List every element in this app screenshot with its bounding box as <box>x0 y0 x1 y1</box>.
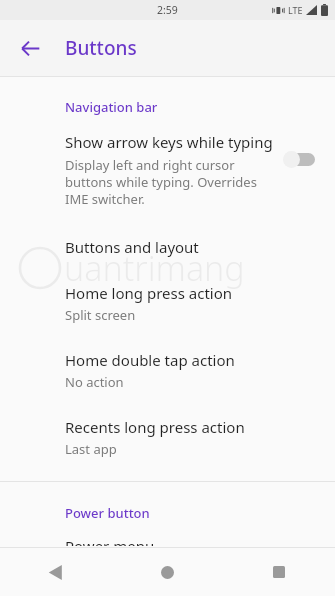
staticText: Show arrow keys while typing <box>65 132 273 152</box>
staticText: Split screen <box>65 306 136 324</box>
button[interactable]: Recents long press action <box>0 416 335 459</box>
button[interactable]: Power menu <box>0 535 335 547</box>
staticText: Buttons <box>65 35 137 61</box>
staticText: Power menu <box>65 536 155 546</box>
button[interactable]: Buttons and layout <box>0 236 335 258</box>
staticText: Home double tap action <box>65 350 235 370</box>
staticText: Display left and right cursor buttons wh… <box>65 156 277 208</box>
button[interactable]: Home <box>111 548 223 596</box>
staticText: LTE <box>288 4 303 16</box>
staticText: Home long press action <box>65 283 233 303</box>
button[interactable]: Home long press action <box>0 282 335 325</box>
button[interactable]: Show arrow keys while typing <box>0 130 335 212</box>
staticText: Buttons and layout <box>65 237 199 257</box>
staticText: Navigation bar <box>65 98 158 116</box>
button[interactable]: Back <box>10 28 50 68</box>
staticText: 2:59 <box>157 3 178 17</box>
button[interactable]: Recents <box>223 548 335 596</box>
staticText: Recents long press action <box>65 417 245 437</box>
button[interactable]: Back <box>0 548 111 596</box>
button[interactable]: Show arrow keys while typing toggle <box>283 146 323 172</box>
staticText: uantrimang <box>64 245 245 291</box>
staticText: Power button <box>65 504 150 522</box>
button[interactable]: Home double tap action <box>0 349 335 392</box>
staticText: Last app <box>65 440 117 458</box>
staticText: No action <box>65 373 124 391</box>
